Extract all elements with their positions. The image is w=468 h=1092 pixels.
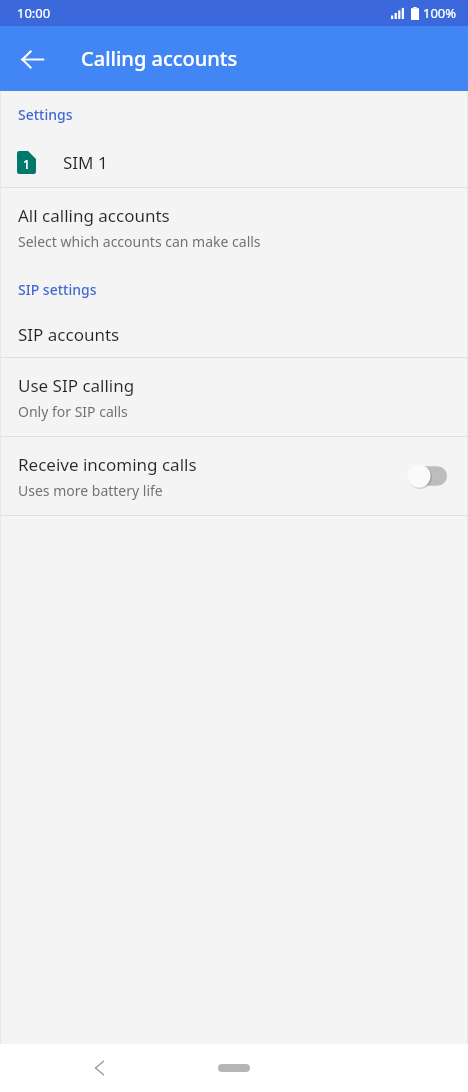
staticText: Calling accounts: [81, 45, 238, 72]
staticText: Uses more battery life: [18, 481, 163, 500]
staticText: 1: [23, 156, 30, 172]
staticText: 10:00: [17, 4, 51, 22]
staticText: SIM 1: [63, 151, 108, 174]
staticText: Settings: [18, 105, 73, 124]
button[interactable]: Back: [8, 35, 56, 83]
staticText: Only for SIP calls: [18, 402, 128, 421]
button[interactable]: Use SIP calling: [0, 358, 468, 436]
button[interactable]: SIP accounts: [0, 312, 468, 357]
staticText: SIP accounts: [18, 323, 120, 346]
staticText: All calling accounts: [18, 204, 170, 227]
staticText: Receive incoming calls: [18, 453, 197, 476]
button[interactable]: Home: [204, 1053, 264, 1083]
staticText: SIP settings: [18, 280, 97, 299]
button[interactable]: Receive incoming calls: [0, 437, 468, 515]
button[interactable]: 1: [0, 137, 468, 187]
button[interactable]: Back: [76, 1044, 124, 1092]
button[interactable]: Receive incoming calls toggle: [407, 461, 453, 491]
staticText: Select which accounts can make calls: [18, 232, 261, 251]
staticText: 100%: [423, 4, 457, 22]
button[interactable]: All calling accounts: [0, 188, 468, 266]
staticText: Use SIP calling: [18, 374, 135, 397]
